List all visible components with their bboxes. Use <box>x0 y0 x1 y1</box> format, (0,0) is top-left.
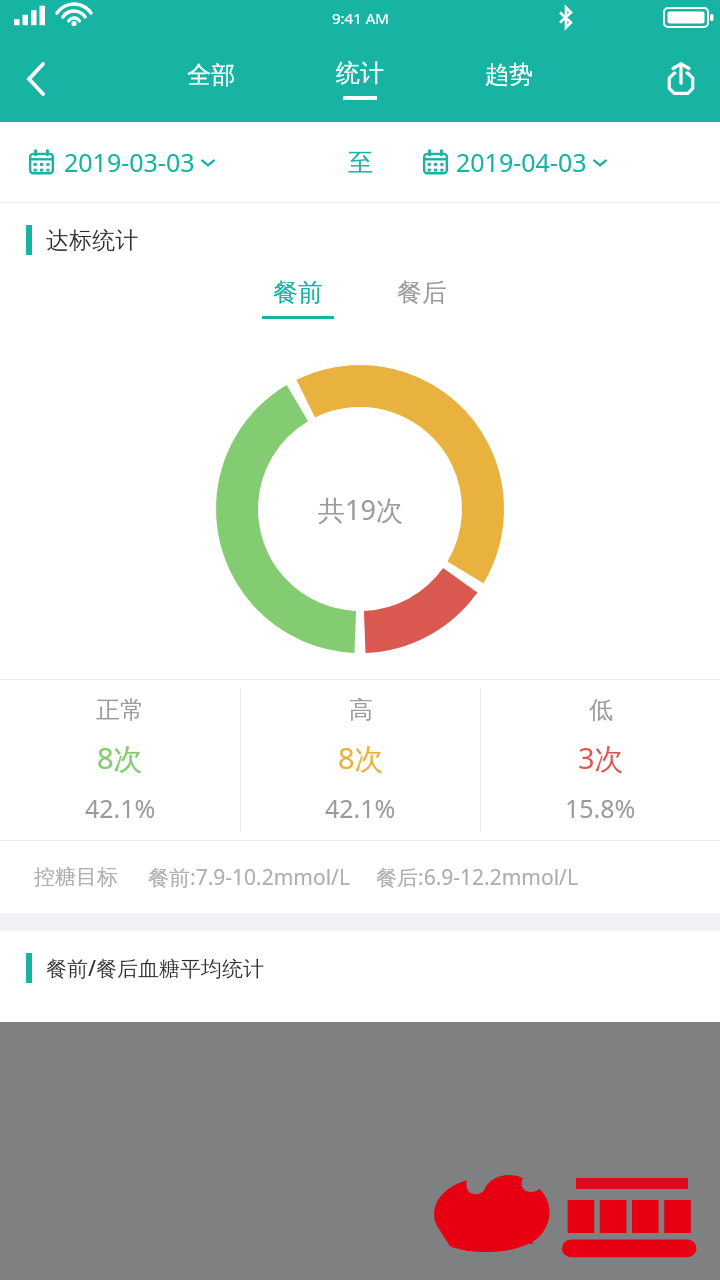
staticText: 正常 <box>96 695 144 725</box>
staticText: 8次 <box>97 738 143 778</box>
staticText: 8次 <box>338 738 384 778</box>
staticText: 餐前:7.9-10.2mmol/L <box>148 863 350 892</box>
button[interactable]: 统计 <box>286 35 434 122</box>
staticText: 餐后 <box>397 277 447 308</box>
staticText: 低 <box>589 695 613 725</box>
button[interactable]: 2019-04-03 <box>422 122 720 202</box>
staticText: 9:41 AM <box>332 8 389 28</box>
staticText: 餐前/餐后血糖平均统计 <box>46 954 265 983</box>
button[interactable]: Back <box>0 35 72 122</box>
staticText: 至 <box>348 147 373 178</box>
staticText: 趋势 <box>485 60 533 90</box>
staticText: 餐后:6.9-12.2mmol/L <box>376 863 578 892</box>
staticText: 2019-04-03 <box>456 145 587 179</box>
staticText: 达标统计 <box>46 226 138 255</box>
staticText: 2019-03-03 <box>64 145 195 179</box>
staticText: 15.8% <box>565 791 636 825</box>
button[interactable]: 低 <box>481 680 720 840</box>
staticText: 全部 <box>187 60 235 90</box>
staticText: 共19次 <box>318 491 403 528</box>
staticText: 餐前 <box>273 277 323 308</box>
button[interactable]: 全部 <box>136 35 286 122</box>
button[interactable]: Share <box>642 35 720 122</box>
staticText: 42.1% <box>85 791 156 825</box>
button[interactable]: 餐前 <box>256 277 340 319</box>
staticText: 统计 <box>336 58 384 88</box>
button[interactable]: 高 <box>241 680 480 840</box>
button[interactable]: 正常 <box>0 680 240 840</box>
staticText: 42.1% <box>325 791 396 825</box>
button[interactable]: 餐后 <box>380 277 464 316</box>
button[interactable]: 2019-03-03 <box>28 122 306 202</box>
button[interactable]: 趋势 <box>434 35 584 122</box>
staticText: 3次 <box>578 738 624 778</box>
staticText: 控糖目标 <box>34 864 118 890</box>
staticText: 高 <box>349 695 373 725</box>
